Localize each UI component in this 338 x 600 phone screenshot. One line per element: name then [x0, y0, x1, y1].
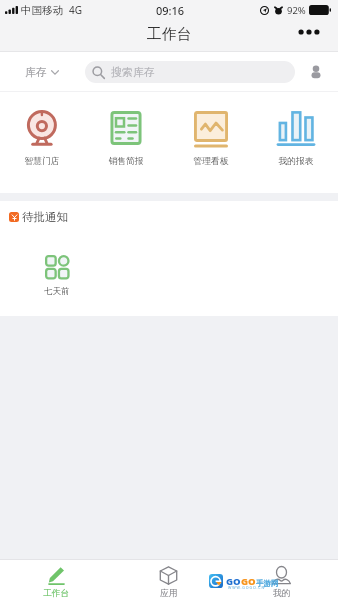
staticText: 中国移动: [21, 4, 63, 17]
button[interactable]: 七天前: [14, 255, 99, 297]
staticText: 92%: [287, 4, 306, 17]
staticText: 4G: [69, 3, 82, 17]
staticText: 搜索库存: [111, 65, 155, 79]
button[interactable]: 我的报表: [253, 107, 338, 167]
button[interactable]: 我的: [225, 560, 338, 600]
staticText: WWW.GOGO.CN: [228, 585, 266, 590]
button[interactable]: Account: [304, 60, 328, 84]
button[interactable]: 搜索库存: [85, 61, 295, 83]
staticText: 手游网: [256, 579, 279, 588]
staticText: 库存: [25, 65, 47, 79]
staticText: 应用: [160, 588, 178, 599]
staticText: 智慧门店: [24, 156, 60, 167]
staticText: 七天前: [44, 286, 70, 297]
button[interactable]: 工作台: [0, 560, 112, 600]
staticText: 销售简报: [108, 156, 144, 167]
staticText: 我的: [273, 588, 291, 599]
button[interactable]: More options: [296, 22, 322, 42]
button[interactable]: 销售简报: [84, 107, 168, 167]
staticText: GO: [226, 575, 241, 588]
staticText: 我的报表: [278, 156, 314, 167]
button[interactable]: 智慧门店: [0, 107, 84, 167]
staticText: 09:16: [156, 3, 185, 18]
staticText: 工作台: [147, 25, 192, 44]
button[interactable]: 库存: [19, 61, 65, 83]
staticText: 管理看板: [193, 156, 229, 167]
button[interactable]: 管理看板: [168, 107, 253, 167]
staticText: 工作台: [43, 588, 70, 599]
button[interactable]: 应用: [112, 560, 225, 600]
staticText: GO: [241, 575, 256, 588]
staticText: 待批通知: [22, 210, 68, 224]
